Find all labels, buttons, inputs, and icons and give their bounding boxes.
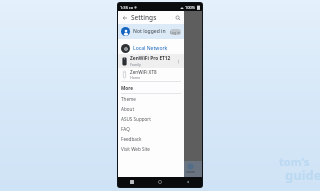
button[interactable]: Theme <box>118 94 184 104</box>
staticText: Log in <box>170 30 181 35</box>
staticText: tom's <box>279 154 310 169</box>
staticText: Family <box>130 62 141 67</box>
staticText: Not logged in <box>133 28 166 35</box>
button[interactable]: Tab 4 <box>180 161 200 177</box>
staticText: Settings <box>131 13 157 22</box>
button[interactable]: Search <box>171 11 184 24</box>
button[interactable]: FAQ <box>118 124 184 134</box>
staticText: FAQ <box>121 126 130 132</box>
staticText: guide <box>285 166 320 184</box>
staticText: ZenWiFi Pro ET12 <box>130 55 171 62</box>
staticText: More <box>121 85 133 91</box>
staticText: Local Network <box>133 45 168 52</box>
staticText: ZenWiFi XT8 <box>130 69 157 75</box>
button[interactable]: About <box>118 104 184 114</box>
staticText: 1:36 <box>120 5 128 10</box>
button[interactable]: Back <box>118 11 131 24</box>
button[interactable]: ZenWiFi XT8 <box>118 68 184 81</box>
button[interactable]: Not logged in <box>118 24 184 39</box>
button[interactable]: ASUS Support <box>118 114 184 124</box>
button[interactable]: Visit Web Site <box>118 144 184 154</box>
staticText: 100% <box>185 5 196 10</box>
staticText: Visit Web Site <box>121 146 150 152</box>
staticText: Theme <box>121 96 136 102</box>
button[interactable]: Home <box>146 177 174 187</box>
button[interactable]: Feedback <box>118 134 184 144</box>
button[interactable]: More options <box>174 57 182 65</box>
button[interactable]: Recents <box>118 177 146 187</box>
staticText: Home <box>130 75 141 80</box>
button[interactable]: Log in <box>170 29 181 35</box>
button[interactable]: ZenWiFi Pro ET12 <box>118 54 184 68</box>
staticText: About <box>121 106 135 112</box>
staticText: Feedback <box>121 136 142 142</box>
button[interactable]: Back <box>174 177 202 187</box>
staticText: ASUS Support <box>121 116 151 122</box>
